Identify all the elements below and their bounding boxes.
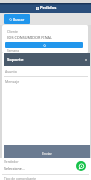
staticText: Seleccione...	[4, 166, 25, 171]
button[interactable]: Search client	[5, 42, 83, 48]
staticText: Buscar	[13, 17, 25, 22]
staticText: (0)S CONSUMIDOR FINAL	[7, 35, 52, 40]
staticText: Tipo de comprobante	[4, 177, 37, 180]
staticText: Mensaje	[5, 79, 20, 84]
staticText: Asunto	[5, 69, 17, 74]
button[interactable]: Orders	[35, 6, 39, 10]
button[interactable]: WhatsApp	[76, 161, 86, 171]
button[interactable]: Enviar	[4, 145, 90, 158]
staticText: Cliente	[7, 29, 19, 34]
staticText: Semana	[7, 49, 20, 53]
staticText: Enviar	[42, 151, 52, 156]
button[interactable]: Buscar	[4, 14, 30, 24]
staticText: Pedidos	[40, 5, 57, 11]
staticText: Soporte	[7, 57, 24, 63]
staticText: Vendedor	[4, 160, 19, 164]
button[interactable]: Close	[83, 57, 88, 62]
